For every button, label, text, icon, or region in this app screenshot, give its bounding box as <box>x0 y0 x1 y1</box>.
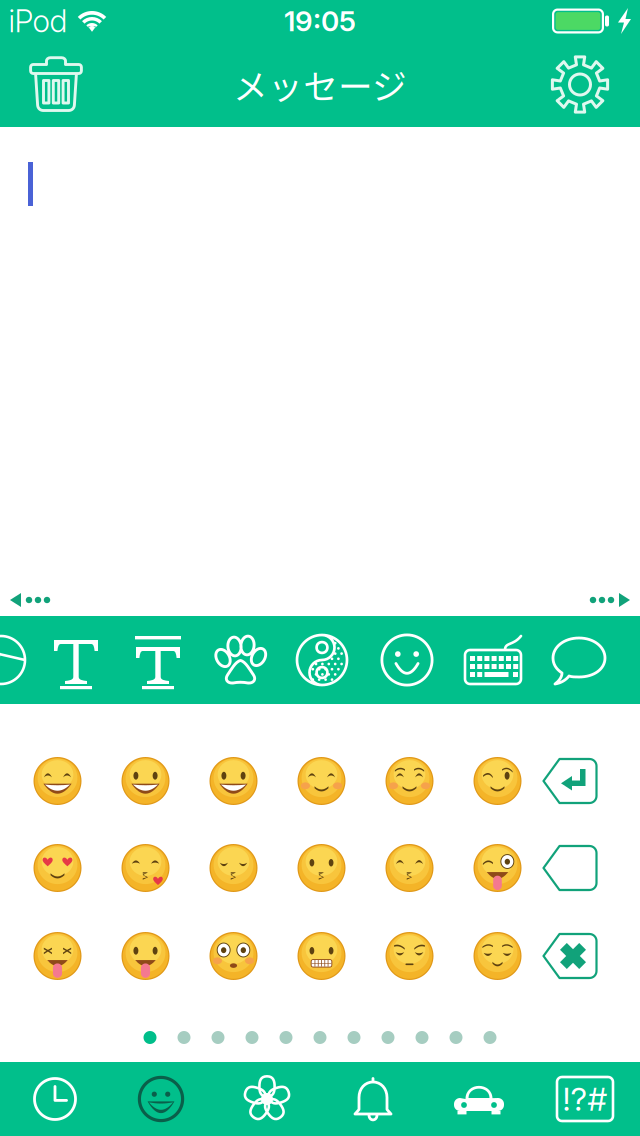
button[interactable]: Settings <box>537 42 623 127</box>
staticText: 19:05 <box>284 4 356 38</box>
button[interactable]: Emoji <box>189 757 277 805</box>
button[interactable]: Emoji <box>189 844 277 892</box>
staticText: メッセージ <box>233 59 407 110</box>
button[interactable]: Symbols <box>293 616 351 704</box>
button[interactable]: Emoji <box>277 844 365 892</box>
button[interactable]: Travel <box>426 1062 532 1136</box>
button[interactable]: Emoji <box>365 932 453 980</box>
button[interactable]: Emoji <box>13 757 101 805</box>
button[interactable]: Emoji <box>189 932 277 980</box>
staticText: iPod <box>8 2 67 39</box>
button[interactable]: Text size <box>129 616 187 704</box>
button[interactable]: Emoji <box>13 932 101 980</box>
button[interactable]: Emoji <box>365 844 453 892</box>
button[interactable]: Emoji <box>101 844 189 892</box>
button[interactable]: Animals <box>211 616 269 704</box>
button[interactable]: Emoji <box>13 844 101 892</box>
button[interactable]: Emoji <box>277 932 365 980</box>
button[interactable]: Emoticons <box>379 616 435 704</box>
button[interactable]: Space <box>541 844 598 892</box>
staticText: !?# <box>562 1080 607 1118</box>
button[interactable]: Emoji <box>277 757 365 805</box>
button[interactable]: Messages <box>551 616 609 704</box>
button[interactable]: Return <box>541 757 598 805</box>
button[interactable]: Symbols <box>532 1062 638 1136</box>
button[interactable]: Keyboard <box>465 616 527 704</box>
button[interactable]: Text style <box>47 616 105 704</box>
button[interactable]: Emoji <box>365 757 453 805</box>
button[interactable]: Delete <box>541 932 598 980</box>
button[interactable]: Emoji <box>101 932 189 980</box>
button[interactable]: Nature <box>214 1062 320 1136</box>
button[interactable]: Recently used <box>2 1062 108 1136</box>
button[interactable]: Smileys <box>108 1062 214 1136</box>
button[interactable]: More candidates <box>582 584 638 616</box>
button[interactable]: Objects <box>320 1062 426 1136</box>
button[interactable]: Emoji <box>453 757 541 805</box>
button[interactable]: Emoji <box>453 844 541 892</box>
button[interactable]: Previous candidates <box>2 584 58 616</box>
button[interactable]: Emoji <box>101 757 189 805</box>
button[interactable]: Delete <box>14 42 98 127</box>
button[interactable]: Emoji <box>453 932 541 980</box>
button[interactable]: Decorations <box>0 616 21 704</box>
